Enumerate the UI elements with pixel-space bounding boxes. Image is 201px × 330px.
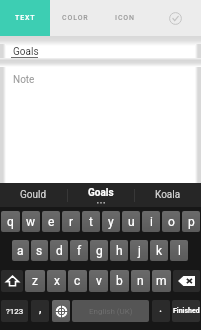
staticText: Gould xyxy=(20,189,47,201)
button[interactable]: Goals xyxy=(67,183,134,207)
staticText: COLOR xyxy=(62,14,89,22)
staticText: f xyxy=(77,244,82,258)
button[interactable]: Goals xyxy=(6,45,195,59)
button[interactable]: e xyxy=(42,211,60,232)
staticText: English (UK) xyxy=(89,307,133,316)
button[interactable]: p xyxy=(182,211,200,232)
button[interactable]: k xyxy=(150,240,168,261)
button[interactable]: Gould xyxy=(0,183,67,207)
staticText: l xyxy=(178,244,181,258)
staticText: Finished xyxy=(173,307,200,315)
staticText: a xyxy=(17,244,24,258)
button[interactable]: , xyxy=(31,300,49,322)
button[interactable]: z xyxy=(25,270,45,292)
staticText: u xyxy=(128,215,135,229)
staticText: j xyxy=(138,244,141,258)
button[interactable]: m xyxy=(152,270,171,292)
button[interactable]: TEXT xyxy=(0,0,50,36)
button[interactable]: . xyxy=(152,300,170,322)
staticText: o xyxy=(168,215,175,229)
button[interactable]: y xyxy=(102,211,120,232)
staticText: p xyxy=(188,215,195,229)
button[interactable]: ?123 xyxy=(1,300,28,322)
staticText: s xyxy=(36,244,43,258)
staticText: ICON xyxy=(115,14,135,22)
staticText: i xyxy=(150,215,153,229)
button[interactable]: u xyxy=(122,211,140,232)
staticText: z xyxy=(32,274,38,288)
button[interactable]: d xyxy=(50,240,68,261)
staticText: . xyxy=(159,301,163,315)
button[interactable]: Koala xyxy=(134,183,201,207)
staticText: m xyxy=(156,274,167,288)
staticText: h xyxy=(116,244,123,258)
staticText: ?123 xyxy=(6,307,24,316)
staticText: e xyxy=(48,215,55,229)
button[interactable]: v xyxy=(89,270,108,292)
button[interactable]: Apply xyxy=(150,0,201,36)
staticText: TEXT xyxy=(15,14,36,22)
button[interactable]: j xyxy=(130,240,148,261)
button[interactable]: i xyxy=(142,211,160,232)
button[interactable]: Change keyboard language xyxy=(52,300,70,322)
staticText: n xyxy=(137,274,144,288)
staticText: w xyxy=(26,215,36,229)
button[interactable]: h xyxy=(110,240,128,261)
staticText: b xyxy=(116,274,123,288)
button[interactable]: a xyxy=(12,240,29,261)
staticText: Goals xyxy=(13,46,39,58)
staticText: c xyxy=(74,274,81,288)
staticText: r xyxy=(69,215,74,229)
button[interactable]: s xyxy=(31,240,48,261)
staticText: d xyxy=(56,244,63,258)
staticText: Koala xyxy=(155,189,181,201)
staticText: x xyxy=(54,274,60,288)
button[interactable]: o xyxy=(162,211,180,232)
button[interactable]: b xyxy=(110,270,129,292)
button[interactable]: t xyxy=(82,211,100,232)
staticText: , xyxy=(39,301,42,315)
staticText: Note xyxy=(13,74,35,86)
staticText: q xyxy=(7,215,14,229)
button[interactable]: ICON xyxy=(100,0,150,36)
button[interactable]: f xyxy=(70,240,88,261)
button[interactable]: n xyxy=(131,270,150,292)
button[interactable]: w xyxy=(22,211,40,232)
staticText: t xyxy=(89,215,93,229)
staticText: k xyxy=(156,244,163,258)
button[interactable]: c xyxy=(68,270,87,292)
staticText: g xyxy=(96,244,103,258)
button[interactable]: Note xyxy=(6,67,195,183)
staticText: y xyxy=(108,215,114,229)
staticText: Goals xyxy=(88,187,114,199)
button[interactable]: x xyxy=(47,270,66,292)
button[interactable]: English (UK) xyxy=(72,300,149,322)
button[interactable]: g xyxy=(90,240,108,261)
button[interactable]: l xyxy=(170,240,188,261)
staticText: v xyxy=(96,274,102,288)
button[interactable]: Shift xyxy=(1,270,23,292)
button[interactable]: Finished xyxy=(172,300,200,322)
button[interactable]: q xyxy=(1,211,20,232)
button[interactable]: COLOR xyxy=(50,0,100,36)
button[interactable]: r xyxy=(62,211,80,232)
button[interactable]: Backspace xyxy=(173,270,200,292)
